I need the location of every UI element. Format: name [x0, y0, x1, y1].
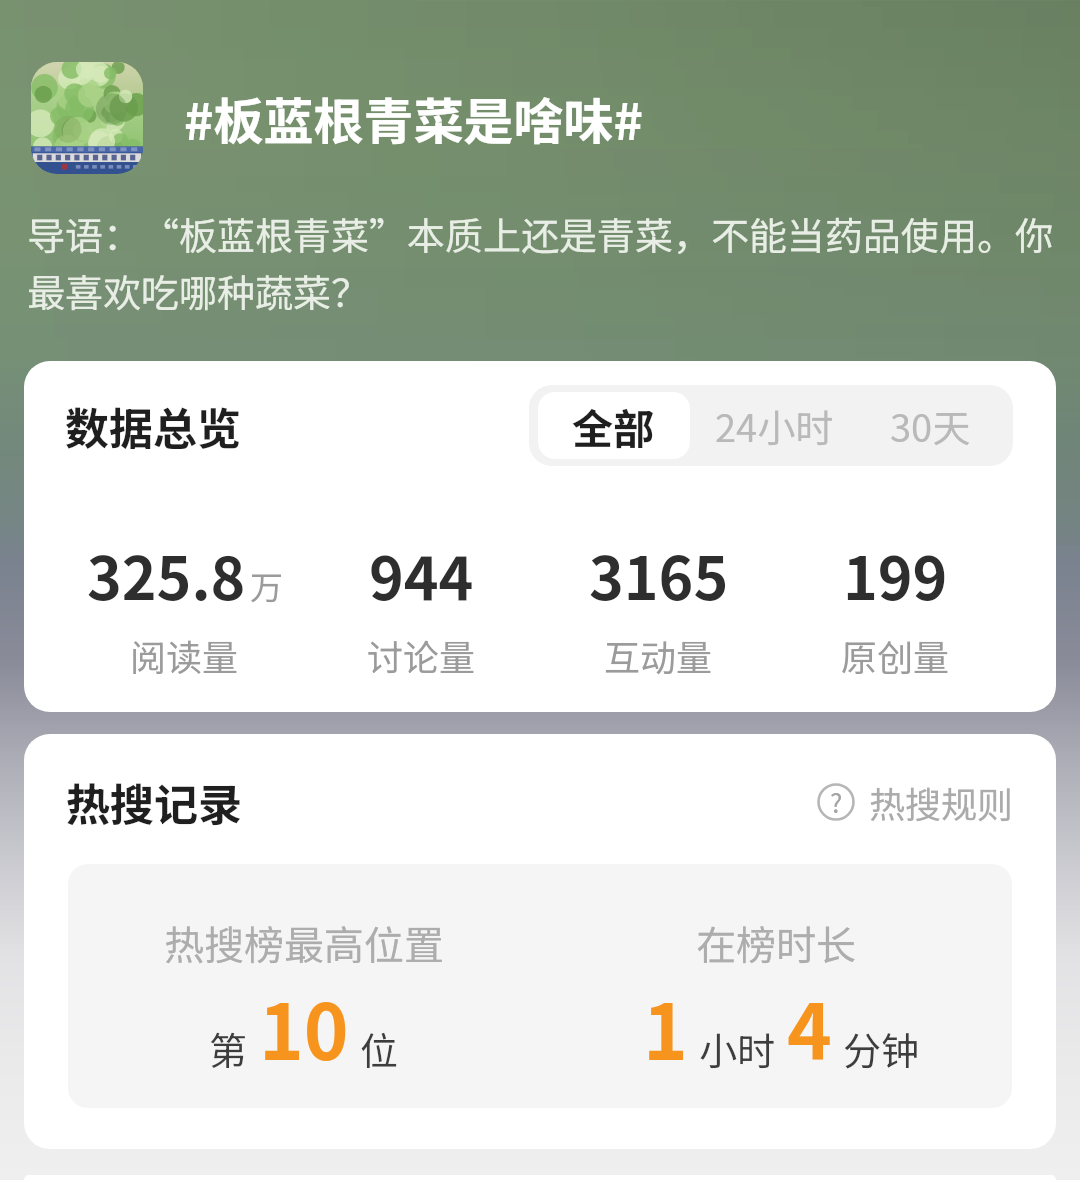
staticText: 阅读量 [130, 629, 239, 681]
staticText: 第 [209, 1021, 248, 1076]
staticText: 原创量 [841, 629, 950, 681]
staticText: 热搜规则 [869, 776, 1014, 828]
staticText: 万 [250, 562, 283, 610]
button[interactable]: 3165 [540, 532, 777, 681]
staticText: 热搜记录 [66, 770, 242, 834]
button[interactable]: 30天 [862, 385, 1013, 466]
button[interactable]: 热搜榜最高位置 [68, 914, 540, 1082]
staticText: 944 [369, 532, 474, 617]
staticText: 30天 [890, 398, 971, 453]
staticText: 1 [643, 972, 688, 1082]
button[interactable]: 199 [777, 532, 1014, 681]
staticText: ? [830, 783, 843, 821]
staticText: 199 [843, 532, 948, 617]
button[interactable]: 全部 [538, 392, 690, 459]
staticText: 分钟 [843, 1021, 920, 1076]
staticText: 小时 [699, 1021, 776, 1076]
staticText: 全部 [572, 396, 654, 455]
staticText: 数据总览 [65, 394, 241, 458]
button[interactable]: 24小时 [695, 385, 862, 466]
button[interactable]: 在榜时长 [540, 914, 1012, 1082]
staticText: 325.8 [87, 532, 246, 617]
staticText: 24小时 [715, 398, 834, 453]
staticText: #板蓝根青菜是啥味# [184, 82, 643, 154]
staticText: 3165 [589, 532, 729, 617]
button[interactable]: 325.8 [66, 532, 303, 681]
staticText: 10 [259, 972, 349, 1082]
staticText: 4 [787, 972, 832, 1082]
staticText: 导语：“板蓝根青菜”本质上还是青菜，不能当药品使用。你最喜欢吃哪种蔬菜？ [27, 206, 1064, 318]
button[interactable]: Topic image [31, 62, 143, 174]
staticText: 互动量 [604, 629, 713, 681]
button[interactable]: Hot search rules [817, 776, 1014, 828]
staticText: 讨论量 [367, 629, 476, 681]
staticText: 在榜时长 [696, 914, 856, 972]
staticText: 热搜榜最高位置 [164, 914, 444, 972]
button[interactable]: 944 [303, 532, 540, 681]
staticText: 位 [360, 1021, 399, 1076]
